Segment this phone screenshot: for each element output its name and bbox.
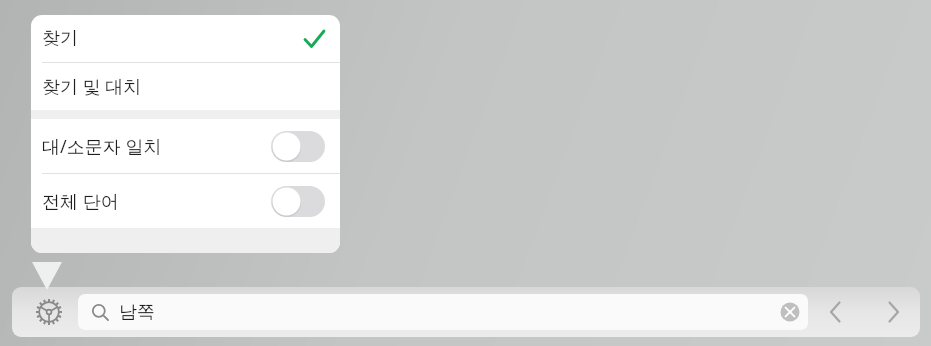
staticText: 남쪽 [119, 301, 155, 324]
button[interactable]: Toggle [271, 131, 325, 162]
button[interactable]: 대/소문자 일치 [31, 119, 340, 173]
button[interactable]: Previous result [820, 296, 852, 328]
staticText: 찾기 [42, 27, 78, 50]
button[interactable]: Next result [877, 296, 909, 328]
button[interactable]: Search settings [35, 298, 63, 326]
staticText: 전체 단어 [42, 189, 119, 214]
button[interactable]: Toggle [271, 186, 325, 217]
button[interactable]: 전체 단어 [31, 174, 340, 228]
button[interactable]: 찾기 [31, 15, 340, 62]
button[interactable]: Clear search [780, 302, 800, 322]
staticText: 대/소문자 일치 [42, 134, 162, 159]
button[interactable]: 남쪽 [78, 294, 808, 330]
staticText: 찾기 및 대치 [42, 74, 142, 99]
button[interactable]: 찾기 및 대치 [31, 63, 340, 110]
